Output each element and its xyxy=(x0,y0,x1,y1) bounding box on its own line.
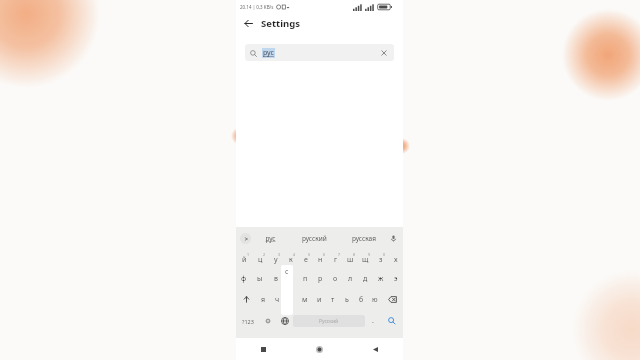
button[interactable]: Back xyxy=(242,17,255,30)
staticText: ?123 xyxy=(242,318,254,325)
button[interactable]: в xyxy=(268,269,283,289)
button[interactable]: ю xyxy=(368,289,382,310)
staticText: Русский xyxy=(319,318,339,325)
staticText: 6 xyxy=(323,252,326,257)
button[interactable]: г xyxy=(328,250,343,269)
button[interactable]: Back xyxy=(347,338,403,360)
staticText: п xyxy=(303,274,308,284)
staticText: н xyxy=(318,255,323,265)
button[interactable]: Backspace xyxy=(382,289,403,310)
button[interactable]: к xyxy=(283,250,298,269)
button[interactable]: рус xyxy=(251,227,290,250)
staticText: э xyxy=(394,274,398,284)
staticText: и xyxy=(317,295,322,305)
staticText: рус xyxy=(265,234,276,243)
staticText: 3 xyxy=(278,252,281,257)
staticText: ш xyxy=(347,255,354,265)
button[interactable]: Shift xyxy=(236,289,256,310)
button[interactable]: Voice input xyxy=(388,233,399,244)
staticText: в xyxy=(274,274,278,284)
button[interactable]: рус xyxy=(245,44,394,61)
button[interactable]: э xyxy=(388,269,403,289)
button[interactable]: Space xyxy=(293,315,365,327)
staticText: Settings xyxy=(261,17,300,30)
button[interactable]: Home xyxy=(291,338,347,360)
staticText: ч xyxy=(275,295,280,305)
button[interactable]: д xyxy=(358,269,373,289)
staticText: ь xyxy=(345,295,349,305)
staticText: у xyxy=(274,255,278,265)
button[interactable]: п xyxy=(298,269,313,289)
button[interactable]: а xyxy=(283,269,298,289)
staticText: к xyxy=(289,255,293,265)
button[interactable]: Recents xyxy=(236,338,291,360)
button[interactable]: русская xyxy=(339,227,388,250)
button[interactable]: х xyxy=(388,250,403,269)
staticText: 8 xyxy=(353,252,356,257)
staticText: 1 xyxy=(247,252,250,257)
staticText: ы xyxy=(257,274,263,284)
button[interactable]: ц xyxy=(252,250,268,269)
button[interactable]: й xyxy=(236,250,252,269)
staticText: русский xyxy=(302,234,327,243)
button[interactable]: щ xyxy=(358,250,373,269)
button[interactable]: ?123 xyxy=(236,310,260,332)
staticText: ф xyxy=(241,274,247,284)
staticText: т xyxy=(331,295,335,305)
staticText: 5 xyxy=(308,252,311,257)
button[interactable]: . xyxy=(365,310,381,332)
button[interactable]: н xyxy=(313,250,328,269)
staticText: с xyxy=(285,267,289,277)
staticText: 4 xyxy=(293,252,296,257)
button[interactable]: и xyxy=(312,289,326,310)
staticText: г xyxy=(334,255,338,265)
staticText: х xyxy=(394,255,398,265)
staticText: ю xyxy=(372,295,378,305)
button[interactable]: м xyxy=(298,289,312,310)
button[interactable]: ь xyxy=(340,289,354,310)
button[interactable]: ч xyxy=(270,289,284,310)
staticText: е xyxy=(304,255,308,265)
button[interactable]: ф xyxy=(236,269,252,289)
staticText: 7 xyxy=(338,252,341,257)
button[interactable]: Search xyxy=(381,310,403,332)
staticText: р xyxy=(318,274,323,284)
button[interactable]: ж xyxy=(373,269,388,289)
staticText: я xyxy=(261,295,266,305)
button[interactable]: More suggestions xyxy=(240,233,251,244)
staticText: б xyxy=(359,295,364,305)
staticText: з xyxy=(379,255,383,265)
button[interactable]: Keyboard settings xyxy=(260,310,276,332)
button[interactable]: з xyxy=(373,250,388,269)
button[interactable]: б xyxy=(354,289,368,310)
button[interactable]: л xyxy=(343,269,358,289)
button[interactable]: ы xyxy=(252,269,268,289)
staticText: рус xyxy=(263,48,274,58)
staticText: л xyxy=(348,274,353,284)
staticText: 2 xyxy=(263,252,266,257)
staticText: ж xyxy=(378,274,384,284)
button[interactable]: с xyxy=(284,289,298,310)
staticText: 9 xyxy=(368,252,371,257)
staticText: 0 xyxy=(383,252,386,257)
button[interactable]: ш xyxy=(343,250,358,269)
button[interactable]: русский xyxy=(290,227,339,250)
staticText: . xyxy=(372,316,374,326)
staticText: м xyxy=(302,295,308,305)
button[interactable]: е xyxy=(298,250,313,269)
staticText: д xyxy=(363,274,368,284)
staticText: й xyxy=(242,255,247,265)
staticText: щ xyxy=(362,255,369,265)
button[interactable]: о xyxy=(328,269,343,289)
button[interactable]: т xyxy=(326,289,340,310)
staticText: 20.14 | 0,3 KB/s xyxy=(240,4,274,10)
staticText: русская xyxy=(352,234,376,243)
button[interactable]: я xyxy=(256,289,270,310)
button[interactable]: р xyxy=(313,269,328,289)
button[interactable]: Change language xyxy=(276,310,293,332)
button[interactable]: у xyxy=(268,250,283,269)
button[interactable]: Clear search xyxy=(379,48,389,58)
staticText: ц xyxy=(258,255,263,265)
